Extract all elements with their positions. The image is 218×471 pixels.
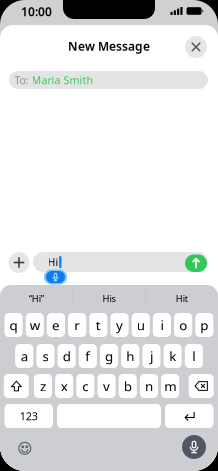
button[interactable]: f	[79, 344, 97, 368]
button[interactable]: u	[132, 313, 150, 337]
button[interactable]: Add attachment	[8, 252, 29, 273]
staticText: k	[169, 347, 176, 365]
button[interactable]: Send	[185, 254, 207, 272]
button[interactable]: j	[142, 344, 160, 368]
staticText: Hit	[176, 292, 188, 305]
staticText: His	[102, 292, 115, 305]
button[interactable]: d	[58, 344, 76, 368]
button[interactable]: c	[76, 374, 94, 398]
button[interactable]: Emoji	[18, 442, 31, 455]
button[interactable]: Hit	[145, 287, 218, 310]
button[interactable]: e	[47, 313, 65, 337]
button[interactable]: s	[36, 344, 54, 368]
staticText: o	[179, 316, 187, 334]
staticText: z	[40, 377, 46, 395]
button[interactable]: His	[73, 287, 145, 310]
staticText: To:	[14, 73, 31, 87]
button[interactable]: h	[121, 344, 139, 368]
staticText: n	[145, 377, 153, 395]
button[interactable]: b	[119, 374, 137, 398]
button[interactable]: Dictation	[182, 435, 206, 459]
button[interactable]: x	[55, 374, 73, 398]
staticText: i	[160, 316, 163, 334]
button[interactable]: v	[97, 374, 116, 398]
button[interactable]: “Hi”	[0, 287, 73, 310]
staticText: x	[61, 377, 68, 395]
staticText: New Message	[68, 38, 150, 54]
staticText: c	[82, 377, 88, 395]
button[interactable]: l	[185, 344, 203, 368]
button[interactable]: m	[161, 374, 179, 398]
button[interactable]: space	[57, 404, 161, 428]
staticText: f	[85, 347, 90, 365]
button[interactable]: 123	[4, 404, 53, 428]
staticText: e	[52, 316, 60, 334]
button[interactable]: i	[153, 313, 171, 337]
button[interactable]: Close	[185, 36, 207, 58]
button[interactable]: a	[15, 344, 33, 368]
button[interactable]: r	[68, 313, 86, 337]
staticText: d	[63, 347, 71, 365]
staticText: y	[116, 316, 123, 334]
staticText: 10:00	[21, 3, 52, 19]
staticText: q	[10, 316, 18, 334]
staticText: u	[137, 316, 145, 334]
staticText: t	[96, 316, 101, 334]
staticText: m	[164, 377, 176, 395]
staticText: b	[124, 377, 132, 395]
staticText: “Hi”	[29, 292, 44, 305]
button[interactable]: t	[89, 313, 107, 337]
staticText: s	[42, 347, 48, 365]
staticText: Hi	[47, 255, 58, 269]
button[interactable]: k	[164, 344, 182, 368]
staticText: Maria Smith	[31, 73, 93, 87]
staticText: p	[200, 316, 208, 334]
button[interactable]: w	[26, 313, 44, 337]
button[interactable]: Shift	[4, 374, 29, 398]
staticText: w	[30, 316, 40, 334]
button[interactable]: Delete	[189, 374, 214, 398]
button[interactable]: Return	[165, 404, 213, 428]
button[interactable]: p	[195, 313, 213, 337]
button[interactable]: To:	[9, 71, 208, 89]
button[interactable]: o	[174, 313, 192, 337]
staticText: a	[21, 347, 28, 365]
staticText: v	[103, 377, 110, 395]
staticText: j	[150, 347, 153, 365]
button[interactable]: g	[100, 344, 118, 368]
button[interactable]: y	[110, 313, 129, 337]
staticText: 123	[20, 409, 38, 423]
button[interactable]: q	[4, 313, 23, 337]
staticText: g	[105, 347, 113, 365]
staticText: l	[192, 347, 195, 365]
button[interactable]: n	[140, 374, 158, 398]
staticText: r	[74, 316, 80, 334]
button[interactable]: z	[34, 374, 52, 398]
staticText: h	[126, 347, 134, 365]
